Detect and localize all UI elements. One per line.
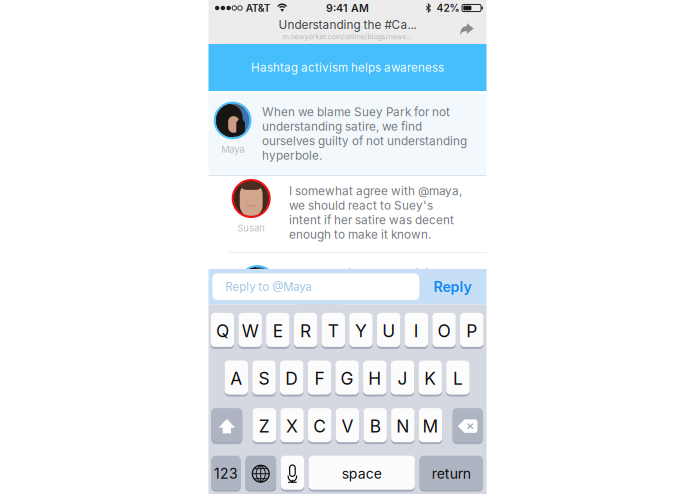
staticText: AT&T <box>246 2 271 14</box>
staticText: Understanding the #Ca... <box>278 17 416 32</box>
button[interactable]: Reply to @Maya <box>212 273 419 300</box>
staticText: X <box>286 416 298 437</box>
staticText: I agree with @susan, it is not about has… <box>297 266 460 310</box>
button[interactable]: V <box>336 409 359 443</box>
button[interactable]: D <box>280 361 303 395</box>
button[interactable]: Delete <box>453 409 483 443</box>
button[interactable]: space <box>309 457 415 491</box>
staticText: M <box>423 416 439 437</box>
button[interactable]: L <box>446 361 470 395</box>
button[interactable]: return <box>419 457 483 491</box>
button[interactable]: H <box>363 361 386 395</box>
staticText: J <box>397 368 407 389</box>
staticText: A <box>230 368 242 389</box>
staticText: Z <box>259 416 270 437</box>
staticText: Susan <box>237 222 265 234</box>
button[interactable]: E <box>266 314 289 348</box>
button[interactable]: A <box>225 361 248 395</box>
button[interactable]: C <box>308 409 331 443</box>
staticText: Hashtag activism helps awareness <box>251 60 444 74</box>
button[interactable]: B <box>363 409 387 443</box>
button[interactable]: Q <box>211 314 234 348</box>
staticText: I <box>414 320 419 341</box>
button[interactable]: K <box>418 361 442 395</box>
button[interactable]: O <box>432 314 456 348</box>
staticText: B <box>370 416 381 437</box>
button[interactable]: Y <box>349 314 373 348</box>
staticText: 42% <box>436 2 459 14</box>
staticText: I somewhat agree with @maya, we should r… <box>289 184 462 241</box>
staticText: C <box>313 416 326 437</box>
staticText: Q <box>216 320 229 341</box>
staticText: U <box>382 320 395 341</box>
staticText: S <box>258 368 269 389</box>
button[interactable]: X <box>280 409 304 443</box>
staticText: V <box>341 416 353 437</box>
button[interactable]: Next keyboard <box>245 457 276 491</box>
button[interactable]: N <box>391 409 414 443</box>
staticText: Dan <box>248 307 266 318</box>
staticText: space <box>342 465 382 482</box>
button[interactable]: J <box>391 361 414 395</box>
staticText: W <box>242 320 259 341</box>
staticText: E <box>273 320 283 341</box>
staticText: L <box>453 368 463 389</box>
staticText: Y <box>355 320 367 341</box>
button[interactable]: W <box>238 314 262 348</box>
staticText: D <box>285 368 298 389</box>
button[interactable]: I <box>405 314 428 348</box>
staticText: return <box>432 465 471 482</box>
button[interactable]: U <box>377 314 400 348</box>
staticText: 123 <box>214 465 238 482</box>
button[interactable]: R <box>294 314 317 348</box>
button[interactable]: P <box>460 314 483 348</box>
staticText: H <box>368 368 381 389</box>
staticText: F <box>314 368 324 389</box>
button[interactable]: M <box>419 409 442 443</box>
button[interactable]: S <box>252 361 276 395</box>
button[interactable]: Share <box>446 16 486 42</box>
staticText: Reply to @Maya <box>225 280 311 294</box>
button[interactable]: Z <box>253 409 276 443</box>
staticText: T <box>328 320 339 341</box>
staticText: m.newyorker.com/online/blogs/news... <box>282 32 412 41</box>
staticText: O <box>437 320 450 341</box>
staticText: G <box>341 368 354 389</box>
staticText: P <box>466 320 477 341</box>
staticText: Reply <box>433 278 471 295</box>
staticText: K <box>424 368 436 389</box>
staticText: N <box>396 416 409 437</box>
staticText: When we blame Suey Park for not understa… <box>262 105 467 162</box>
button[interactable]: G <box>335 361 359 395</box>
staticText: Maya <box>221 144 244 155</box>
button[interactable]: T <box>322 314 345 348</box>
staticText: R <box>300 320 311 341</box>
button[interactable]: F <box>308 361 331 395</box>
button[interactable]: Reply <box>419 273 485 300</box>
button[interactable]: Dictate <box>281 457 304 491</box>
button[interactable]: 123 <box>211 457 241 491</box>
staticText: 9:41 AM <box>326 1 369 14</box>
button[interactable]: Shift <box>211 409 242 443</box>
